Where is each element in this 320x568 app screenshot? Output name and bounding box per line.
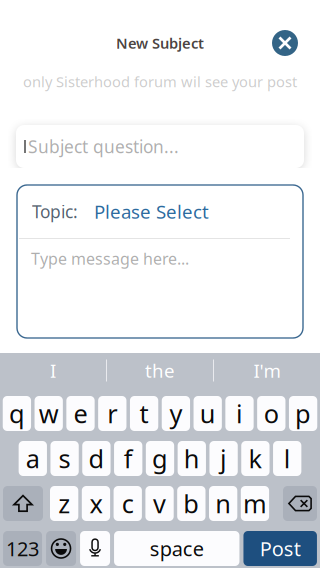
staticText: a (26, 442, 40, 475)
button[interactable]: c (114, 486, 142, 521)
button[interactable]: Delete (283, 486, 317, 521)
button[interactable]: g (146, 441, 174, 476)
staticText: q (9, 397, 25, 430)
button[interactable]: b (177, 486, 205, 521)
button[interactable]: s (50, 441, 79, 476)
button[interactable]: a (19, 441, 47, 476)
button[interactable]: I (0, 353, 106, 388)
staticText: m (243, 487, 267, 520)
button[interactable]: space (114, 531, 239, 566)
staticText: u (200, 397, 216, 430)
button[interactable]: I'm (214, 353, 320, 388)
staticText: I (50, 358, 56, 383)
staticText: Please Select (94, 199, 209, 224)
staticText: g (152, 442, 168, 475)
button[interactable]: f (114, 441, 142, 476)
button[interactable]: w (34, 396, 63, 431)
button[interactable]: t (130, 396, 158, 431)
staticText: space (150, 535, 204, 562)
button[interactable]: i (225, 396, 254, 431)
staticText: r (107, 397, 117, 430)
staticText: x (89, 487, 102, 520)
staticText: z (58, 487, 70, 520)
button[interactable]: e (66, 396, 95, 431)
staticText: Topic: (32, 200, 78, 223)
staticText: only Sisterhood forum wil see your post (23, 72, 297, 91)
button[interactable]: m (241, 486, 269, 521)
staticText: Subject question... (28, 135, 179, 158)
staticText: f (124, 442, 133, 475)
staticText: o (264, 397, 279, 430)
staticText: v (153, 487, 166, 520)
staticText: e (73, 397, 87, 430)
staticText: New Subject (116, 33, 204, 53)
staticText: l (284, 442, 291, 475)
button[interactable]: o (257, 396, 285, 431)
staticText: I'm (253, 358, 280, 383)
button[interactable]: the (107, 353, 213, 388)
staticText: t (140, 397, 149, 430)
staticText: s (59, 442, 71, 475)
button[interactable]: Close (272, 30, 298, 56)
button[interactable]: h (178, 441, 206, 476)
button[interactable]: Dictate (80, 531, 110, 566)
staticText: k (248, 442, 262, 475)
button[interactable]: j (209, 441, 238, 476)
button[interactable]: Shift (3, 486, 43, 521)
button[interactable]: p (289, 396, 317, 431)
button[interactable]: x (82, 486, 110, 521)
staticText: h (184, 442, 200, 475)
button[interactable]: d (82, 441, 110, 476)
staticText: b (183, 487, 199, 520)
button[interactable]: Please Select (78, 199, 209, 224)
button[interactable]: l (273, 441, 301, 476)
button[interactable]: y (162, 396, 190, 431)
button[interactable]: n (209, 486, 237, 521)
button[interactable]: 123 (3, 531, 42, 566)
button[interactable]: Emoji (46, 531, 76, 566)
button[interactable]: q (3, 396, 31, 431)
staticText: y (169, 397, 182, 430)
staticText: c (122, 487, 134, 520)
staticText: d (88, 442, 104, 475)
staticText: Post (260, 535, 301, 562)
button[interactable]: Post (243, 531, 317, 566)
staticText: p (295, 397, 311, 430)
staticText: i (236, 397, 243, 430)
button[interactable]: k (241, 441, 269, 476)
staticText: w (39, 397, 59, 430)
staticText: n (215, 487, 231, 520)
button[interactable]: z (50, 486, 78, 521)
button[interactable]: u (193, 396, 222, 431)
staticText: Type message here... (31, 248, 189, 269)
button[interactable]: v (145, 486, 174, 521)
staticText: the (145, 358, 175, 383)
staticText: j (220, 442, 227, 475)
button[interactable]: r (98, 396, 126, 431)
staticText: 123 (6, 535, 39, 562)
